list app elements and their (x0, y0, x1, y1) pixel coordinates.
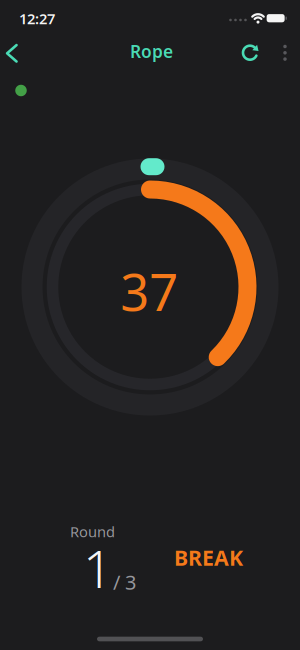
staticText: 1 (83, 533, 113, 602)
staticText: BREAK (174, 543, 243, 572)
button[interactable]: Restart (237, 40, 263, 66)
staticText: 37 (120, 258, 178, 325)
staticText: 12:27 (19, 9, 55, 28)
button[interactable]: BREAK (168, 537, 249, 578)
button[interactable]: Back (0, 37, 24, 69)
staticText: Round (70, 522, 115, 541)
button[interactable]: More (277, 39, 293, 67)
staticText: Rope (130, 40, 173, 63)
staticText: / 3 (113, 569, 136, 595)
